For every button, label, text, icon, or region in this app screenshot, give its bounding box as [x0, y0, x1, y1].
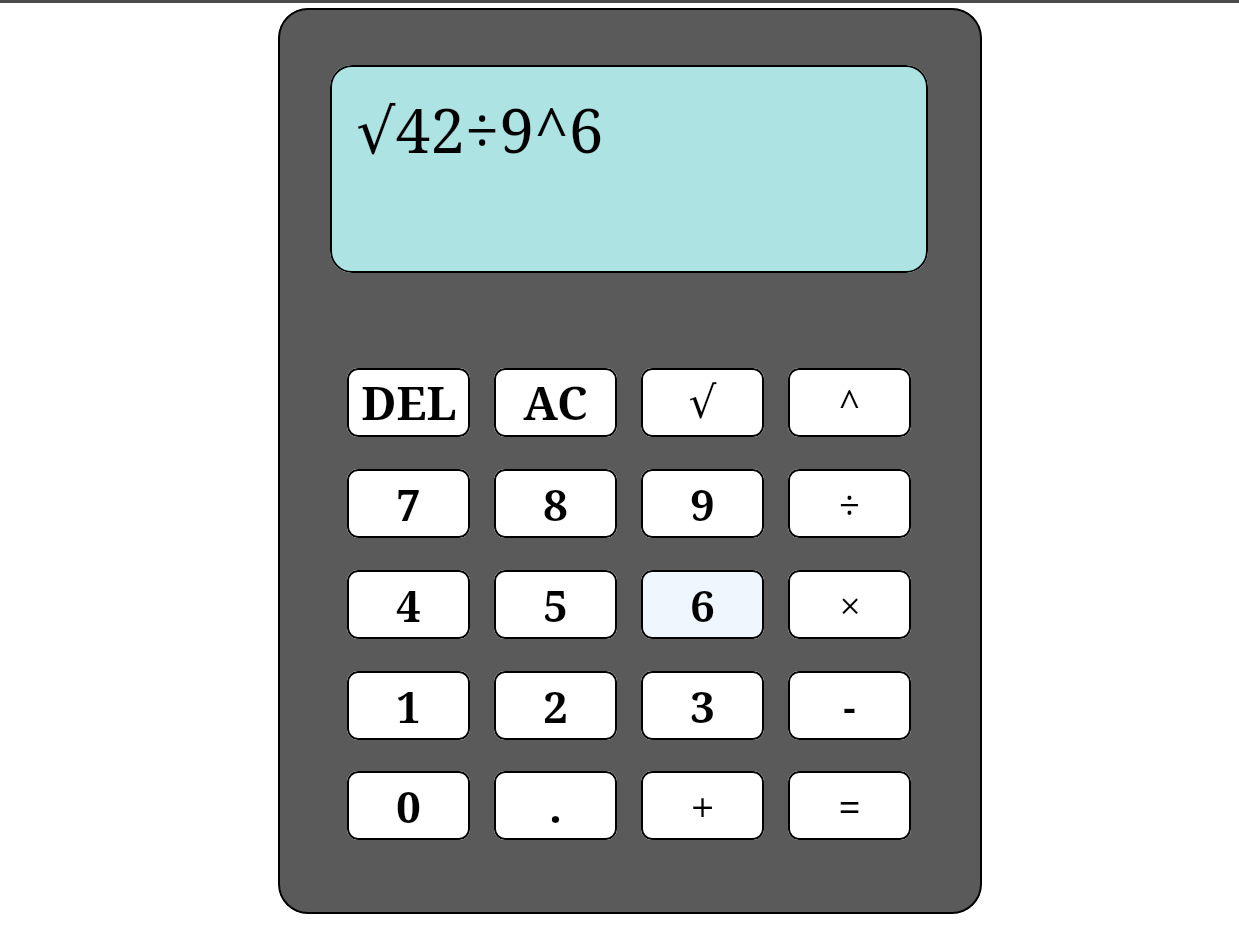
staticText: √42÷9^6: [356, 87, 604, 171]
button[interactable]: 2: [494, 671, 617, 740]
staticText: ^: [838, 376, 861, 430]
staticText: ÷: [838, 477, 861, 531]
staticText: 5: [543, 575, 568, 635]
button[interactable]: 8: [494, 469, 617, 538]
staticText: 4: [396, 575, 421, 635]
button[interactable]: 3: [641, 671, 764, 740]
staticText: -: [843, 679, 856, 733]
button[interactable]: ×: [788, 570, 911, 639]
button[interactable]: AC: [494, 368, 617, 437]
button[interactable]: ^: [788, 368, 911, 437]
button[interactable]: =: [788, 771, 911, 840]
button[interactable]: ÷: [788, 469, 911, 538]
button[interactable]: 5: [494, 570, 617, 639]
button[interactable]: 7: [347, 469, 470, 538]
staticText: AC: [523, 371, 588, 434]
button[interactable]: 1: [347, 671, 470, 740]
staticText: 8: [543, 474, 568, 534]
staticText: ×: [839, 579, 861, 631]
button[interactable]: +: [641, 771, 764, 840]
staticText: 0: [396, 776, 421, 836]
staticText: √: [688, 377, 717, 428]
button[interactable]: 0: [347, 771, 470, 840]
staticText: DEL: [361, 371, 457, 434]
button[interactable]: -: [788, 671, 911, 740]
staticText: .: [549, 776, 562, 836]
staticText: 2: [543, 676, 568, 736]
button[interactable]: 9: [641, 469, 764, 538]
staticText: 3: [690, 676, 715, 736]
staticText: 9: [690, 474, 715, 534]
staticText: +: [690, 776, 715, 836]
staticText: 6: [690, 575, 715, 635]
button[interactable]: DEL: [347, 368, 470, 437]
button[interactable]: .: [494, 771, 617, 840]
staticText: 7: [396, 474, 421, 534]
button[interactable]: 4: [347, 570, 470, 639]
button[interactable]: √: [641, 368, 764, 437]
staticText: 1: [396, 676, 421, 736]
button[interactable]: √42÷9^6: [330, 65, 928, 273]
staticText: =: [838, 779, 861, 833]
button[interactable]: 6: [641, 570, 764, 639]
